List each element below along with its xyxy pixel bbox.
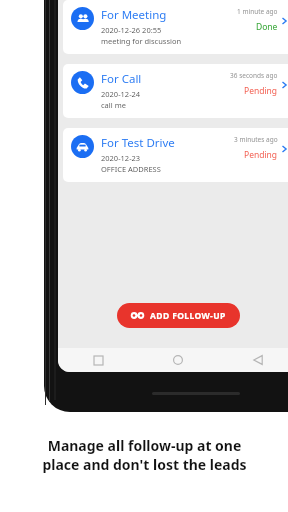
staticText: Pending <box>244 85 278 97</box>
staticText: 2020-12-23 <box>101 153 141 163</box>
staticText: 36 seconds ago <box>230 71 278 80</box>
staticText: 1 minute ago <box>237 7 278 16</box>
staticText: call me <box>101 100 126 110</box>
button[interactable]: For Meeting <box>63 0 288 54</box>
staticText: Manage all follow-up at one place and do… <box>42 436 247 474</box>
staticText: 2020-12-26 20:55 <box>101 25 162 35</box>
button[interactable]: Back <box>218 348 288 372</box>
staticText: Pending <box>244 149 278 161</box>
button[interactable]: For Test Drive <box>63 128 288 182</box>
button[interactable]: For Call <box>63 64 288 118</box>
staticText: meeting for discussion <box>101 36 182 46</box>
staticText: ADD FOLLOW-UP <box>150 310 226 322</box>
button[interactable]: ADD FOLLOW-UP <box>117 303 240 328</box>
staticText: For Test Drive <box>101 135 175 151</box>
staticText: Done <box>256 21 278 33</box>
staticText: 2020-12-24 <box>101 89 141 99</box>
staticText: OFFICE ADDRESS <box>101 164 161 174</box>
button[interactable]: Recents <box>58 348 138 372</box>
staticText: For Meeting <box>101 7 167 23</box>
staticText: For Call <box>101 71 142 87</box>
button[interactable]: Home <box>138 348 218 372</box>
staticText: 3 minutes ago <box>234 135 278 144</box>
